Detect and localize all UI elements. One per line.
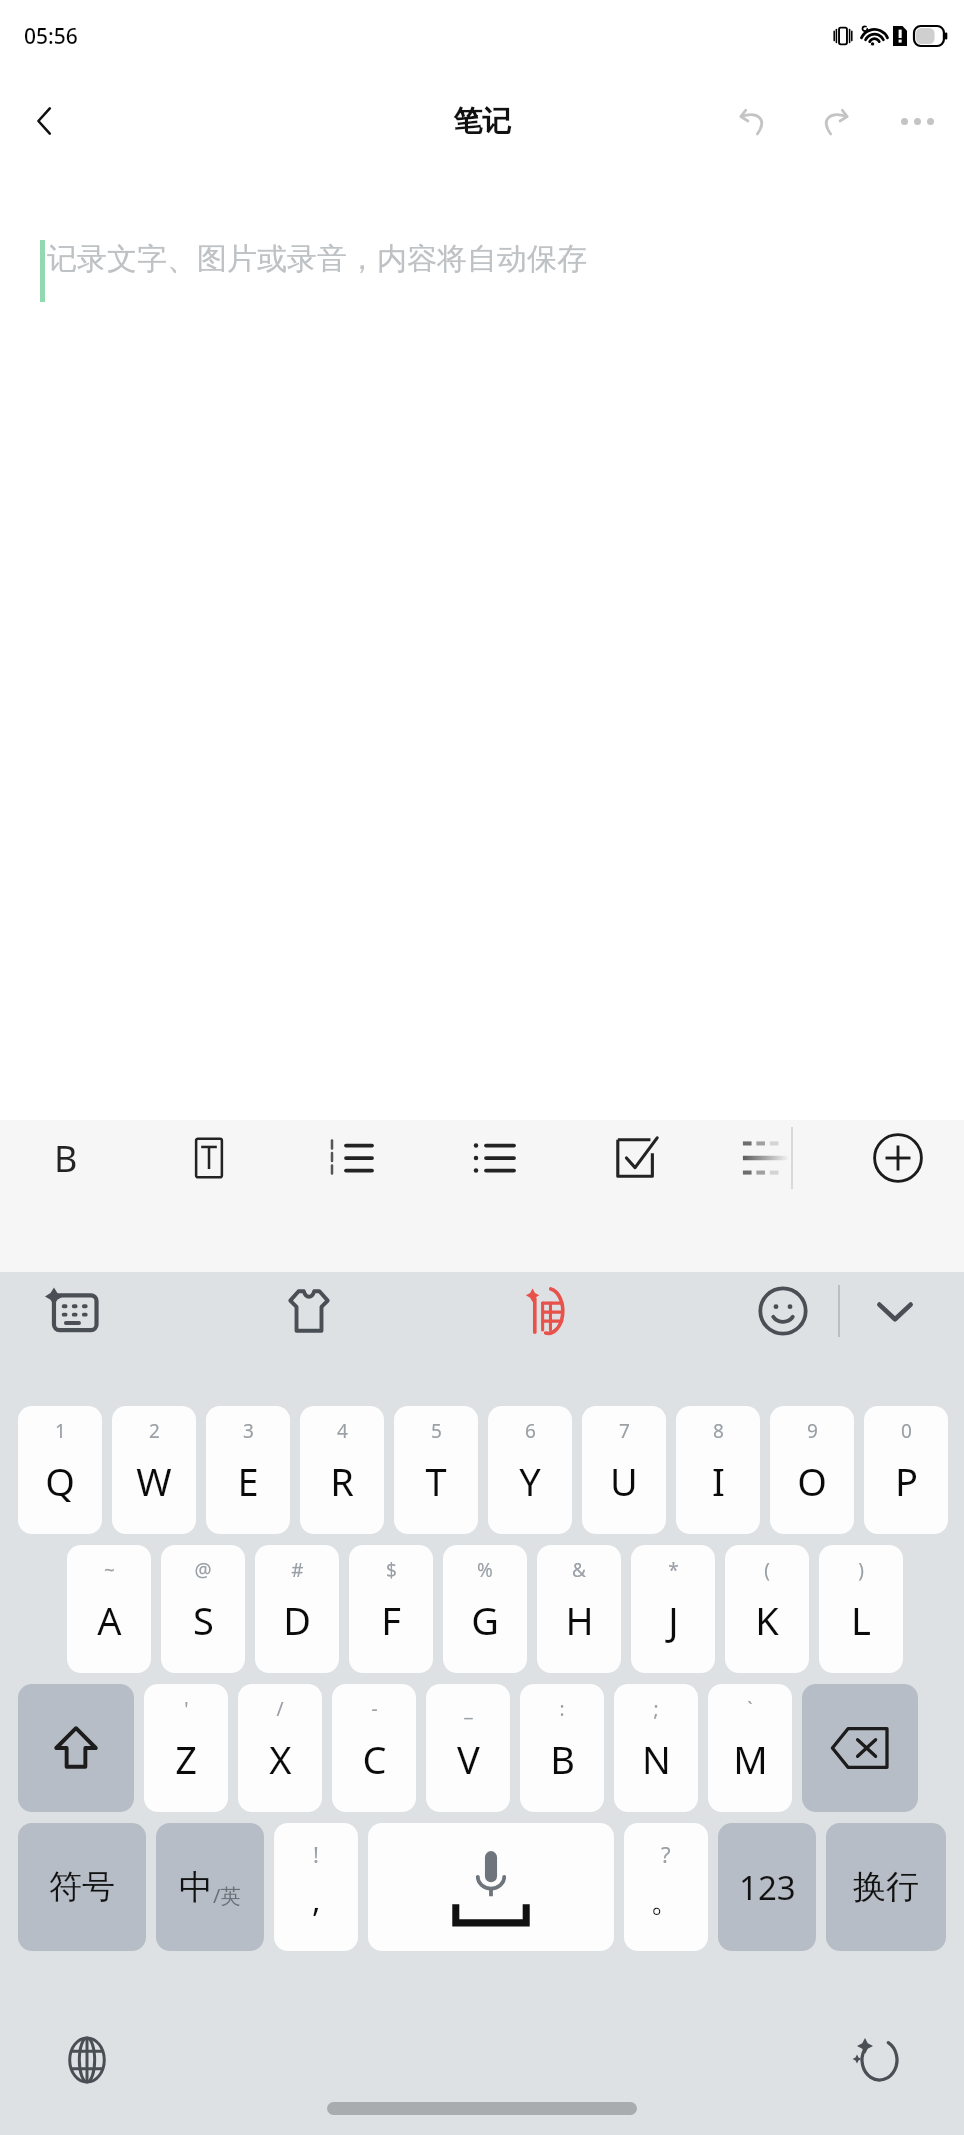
button[interactable]: Emoji <box>744 1272 822 1350</box>
button[interactable]: : <box>520 1684 604 1812</box>
staticText: $ <box>386 1557 397 1583</box>
button[interactable]: - <box>332 1684 416 1812</box>
button[interactable]: 4 <box>300 1406 384 1534</box>
staticText: 换行 <box>853 1866 919 1908</box>
staticText: B <box>550 1733 575 1785</box>
button[interactable]: 0 <box>864 1406 948 1534</box>
button[interactable]: Numbered list <box>313 1120 389 1196</box>
button[interactable]: Festive <box>507 1272 585 1350</box>
button[interactable]: $ <box>349 1545 433 1673</box>
staticText: # <box>291 1557 304 1583</box>
button[interactable]: 5 <box>394 1406 478 1534</box>
button[interactable]: Add <box>860 1120 936 1196</box>
staticText: _ <box>464 1696 473 1722</box>
button[interactable]: 符号 <box>18 1823 146 1951</box>
button[interactable]: 6 <box>488 1406 572 1534</box>
staticText: ! <box>313 1839 319 1869</box>
staticText: Z <box>175 1733 197 1785</box>
button[interactable]: ~ <box>67 1545 151 1673</box>
button[interactable]: @ <box>161 1545 245 1673</box>
staticText: I <box>712 1455 725 1507</box>
staticText: 123 <box>739 1865 796 1910</box>
staticText: ) <box>858 1557 864 1583</box>
staticText: - <box>371 1696 378 1722</box>
button[interactable]: 3 <box>206 1406 290 1534</box>
staticText: 9 <box>807 1418 818 1444</box>
staticText: P <box>895 1455 918 1507</box>
button[interactable]: 换行 <box>826 1823 946 1951</box>
staticText: B <box>54 1134 78 1183</box>
button[interactable]: _ <box>426 1684 510 1812</box>
button[interactable]: ; <box>614 1684 698 1812</box>
button[interactable]: # <box>255 1545 339 1673</box>
button[interactable]: AI assistant <box>842 2025 912 2095</box>
button[interactable]: / <box>238 1684 322 1812</box>
staticText: V <box>457 1733 480 1785</box>
button[interactable]: 7 <box>582 1406 666 1534</box>
button[interactable]: Bulleted list <box>456 1120 532 1196</box>
button[interactable]: ? <box>624 1823 708 1951</box>
button[interactable]: More options <box>886 90 948 152</box>
button[interactable]: * <box>631 1545 715 1673</box>
staticText: Y <box>519 1455 541 1507</box>
button[interactable]: Keyboard skin <box>270 1272 348 1350</box>
button[interactable]: Undo <box>722 90 784 152</box>
staticText: H <box>565 1594 594 1646</box>
button[interactable]: Hide keyboard <box>856 1272 934 1350</box>
button[interactable]: Backspace <box>802 1684 918 1812</box>
staticText: K <box>755 1594 779 1646</box>
staticText: 6 <box>525 1418 536 1444</box>
staticText: ~ <box>104 1557 115 1583</box>
button[interactable]: 8 <box>676 1406 760 1534</box>
button[interactable]: 2 <box>112 1406 196 1534</box>
button[interactable]: Back <box>14 90 76 152</box>
staticText: , <box>312 1878 321 1922</box>
staticText: : <box>559 1696 565 1722</box>
button[interactable]: 123 <box>718 1823 816 1951</box>
button[interactable]: ! <box>274 1823 358 1951</box>
staticText: 符号 <box>49 1866 115 1908</box>
staticText: /英 <box>213 1882 241 1909</box>
button[interactable]: Bold <box>28 1120 104 1196</box>
staticText: % <box>477 1557 493 1583</box>
button[interactable]: AI keyboard <box>34 1272 112 1350</box>
button[interactable]: Checklist <box>599 1120 675 1196</box>
button[interactable]: Redo <box>804 90 866 152</box>
staticText: 3 <box>243 1418 254 1444</box>
staticText: T <box>425 1455 447 1507</box>
staticText: C <box>362 1733 387 1785</box>
staticText: @ <box>194 1557 212 1583</box>
staticText: X <box>269 1733 292 1785</box>
staticText: ( <box>764 1557 770 1583</box>
staticText: O <box>797 1455 827 1507</box>
staticText: ? <box>661 1839 671 1869</box>
button[interactable]: 1 <box>18 1406 102 1534</box>
button[interactable]: ` <box>708 1684 792 1812</box>
staticText: L <box>851 1594 871 1646</box>
staticText: 05:56 <box>24 22 78 51</box>
button[interactable]: Space <box>368 1823 614 1951</box>
staticText: 4 <box>337 1418 348 1444</box>
staticText: M <box>733 1733 768 1785</box>
button[interactable]: & <box>537 1545 621 1673</box>
button[interactable]: ' <box>144 1684 228 1812</box>
button[interactable]: 中 <box>156 1823 264 1951</box>
staticText: ` <box>747 1696 753 1722</box>
staticText: A <box>97 1594 122 1646</box>
button[interactable]: Change language <box>52 2025 122 2095</box>
staticText: 。 <box>650 1880 682 1920</box>
staticText: N <box>642 1733 671 1785</box>
staticText: R <box>330 1455 354 1507</box>
staticText: G <box>471 1594 499 1646</box>
staticText: ' <box>184 1696 189 1722</box>
button[interactable]: Text style <box>171 1120 247 1196</box>
button[interactable]: % <box>443 1545 527 1673</box>
staticText: 7 <box>619 1418 630 1444</box>
staticText: J <box>668 1594 679 1646</box>
button[interactable]: ( <box>725 1545 809 1673</box>
staticText: S <box>193 1594 214 1646</box>
button[interactable]: ) <box>819 1545 903 1673</box>
staticText: * <box>668 1557 679 1583</box>
button[interactable]: 9 <box>770 1406 854 1534</box>
button[interactable]: Shift <box>18 1684 134 1812</box>
